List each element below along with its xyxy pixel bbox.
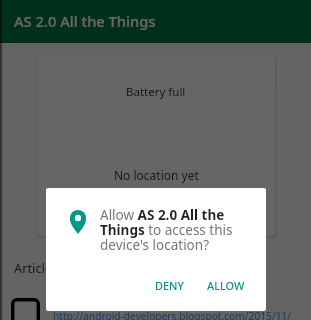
- staticText: DENY: [155, 278, 184, 293]
- staticText: No location yet: [114, 167, 199, 183]
- button[interactable]: ALLOW: [199, 272, 253, 299]
- staticText: http://android-developers.blogspot.com/2…: [53, 309, 292, 320]
- button[interactable]: DENY: [147, 272, 192, 299]
- staticText: Allow AS 2.0 All the Things to access th…: [100, 206, 237, 254]
- other: Location: [70, 210, 86, 234]
- staticText: Articles: [14, 259, 59, 276]
- staticText: ALLOW: [207, 278, 245, 293]
- staticText: Battery full: [126, 84, 186, 100]
- staticText: AS 2.0 All the Things: [14, 11, 156, 31]
- other: Article thumbnail: [11, 298, 40, 320]
- button[interactable]: Battery full: [37, 54, 275, 236]
